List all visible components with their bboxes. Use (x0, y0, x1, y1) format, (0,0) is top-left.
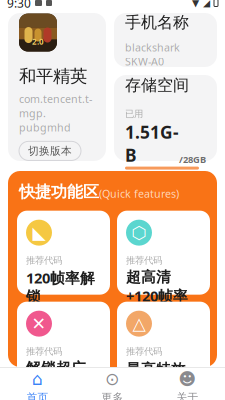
staticText: 最高特效-风景 (126, 359, 191, 397)
staticText: 9:30 (7, 0, 31, 11)
staticText: /28GB (179, 153, 206, 166)
staticText: 解锁超广角 (26, 359, 86, 395)
button[interactable]: △ (117, 302, 210, 386)
button[interactable]: ☻ (150, 368, 225, 400)
button[interactable]: ⌂ (0, 368, 75, 400)
staticText: 切换版本 (28, 144, 72, 157)
staticText: com.tencent.tmgp. (19, 92, 92, 120)
staticText: ☻ (178, 369, 196, 389)
staticText: 关于 (176, 391, 198, 400)
button[interactable]: ⊙ (75, 368, 150, 400)
staticText: 推荐代码 (26, 255, 62, 266)
staticText: 120帧率解锁 (26, 268, 95, 306)
button[interactable]: ⬡ (117, 211, 210, 295)
staticText: blackshark SKW-A0 (125, 40, 180, 68)
staticText: 已用 (125, 108, 143, 120)
staticText: 存储空间 (125, 75, 189, 95)
staticText: ◣ (32, 223, 45, 242)
staticText: 手机名称 (125, 12, 189, 32)
staticText: 推荐代码 (126, 255, 162, 266)
staticText: ▼ (192, 0, 199, 8)
staticText: 超高清+120帧率 (126, 268, 188, 306)
button[interactable]: ◣ (17, 211, 110, 295)
staticText: ⬡ (131, 223, 146, 242)
staticText: 快捷功能区 (19, 182, 99, 202)
staticText: 和平精英 (19, 66, 87, 87)
staticText: 2.0 (32, 36, 44, 47)
staticText: (Quick features) (99, 186, 179, 201)
staticText: 首页 (26, 391, 48, 400)
staticText: ⊙ (105, 369, 120, 389)
staticText: ◢ (203, 0, 210, 8)
staticText: 推荐代码 (26, 346, 62, 357)
button[interactable]: 切换版本 (19, 141, 81, 160)
staticText: ✕ (31, 314, 46, 333)
staticText: pubgmhd (19, 120, 71, 134)
staticText: 1.51GB (125, 120, 179, 166)
staticText: 更多 (101, 391, 123, 400)
staticText: ⌂ (32, 369, 43, 389)
button[interactable]: ✕ (17, 302, 110, 386)
staticText: △ (132, 314, 145, 333)
staticText: 推荐代码 (126, 346, 162, 357)
